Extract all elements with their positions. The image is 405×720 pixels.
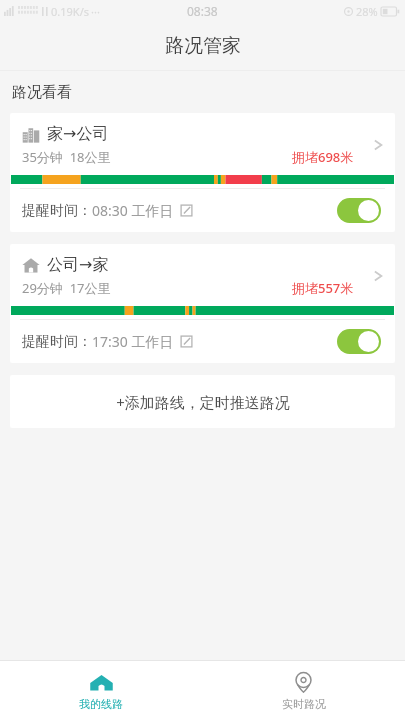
staticText: 家→公司 xyxy=(47,124,109,144)
other: 查看详情 xyxy=(372,266,385,286)
button[interactable]: 实时路况 xyxy=(202,661,405,720)
staticText: +添加路线，定时推送路况 xyxy=(116,392,290,412)
staticText: 28% xyxy=(356,4,378,19)
staticText: 路况看看 xyxy=(12,83,72,102)
staticText: 08:30 工作日 xyxy=(92,201,174,220)
staticText: 公司→家 xyxy=(47,255,109,275)
button[interactable]: 家→公司 xyxy=(10,113,395,174)
button[interactable]: 提醒开关 xyxy=(337,329,381,354)
button[interactable]: 提醒开关 xyxy=(337,198,381,223)
staticText: 我的线路 xyxy=(79,697,123,711)
button[interactable]: 公司→家 xyxy=(10,244,395,305)
staticText: 17:30 工作日 xyxy=(92,332,174,351)
staticText: ··· xyxy=(91,4,100,19)
button[interactable]: 我的线路 xyxy=(0,661,202,720)
staticText: 提醒时间： xyxy=(22,202,92,220)
staticText: 路况管家 xyxy=(165,34,241,58)
staticText: 提醒时间： xyxy=(22,333,92,351)
staticText: 拥堵698米 xyxy=(292,148,354,166)
staticText: 35分钟 18公里 xyxy=(22,148,111,166)
other: 查看详情 xyxy=(372,135,385,155)
button[interactable]: 编辑提醒时间 xyxy=(179,334,194,349)
button[interactable]: 编辑提醒时间 xyxy=(179,203,194,218)
staticText: 0.19K/s xyxy=(51,4,89,19)
button[interactable]: +添加路线，定时推送路况 xyxy=(10,375,395,428)
staticText: 拥堵557米 xyxy=(292,279,354,297)
staticText: 08:38 xyxy=(187,3,218,19)
staticText: 29分钟 17公里 xyxy=(22,279,111,297)
staticText: 实时路况 xyxy=(282,697,326,711)
